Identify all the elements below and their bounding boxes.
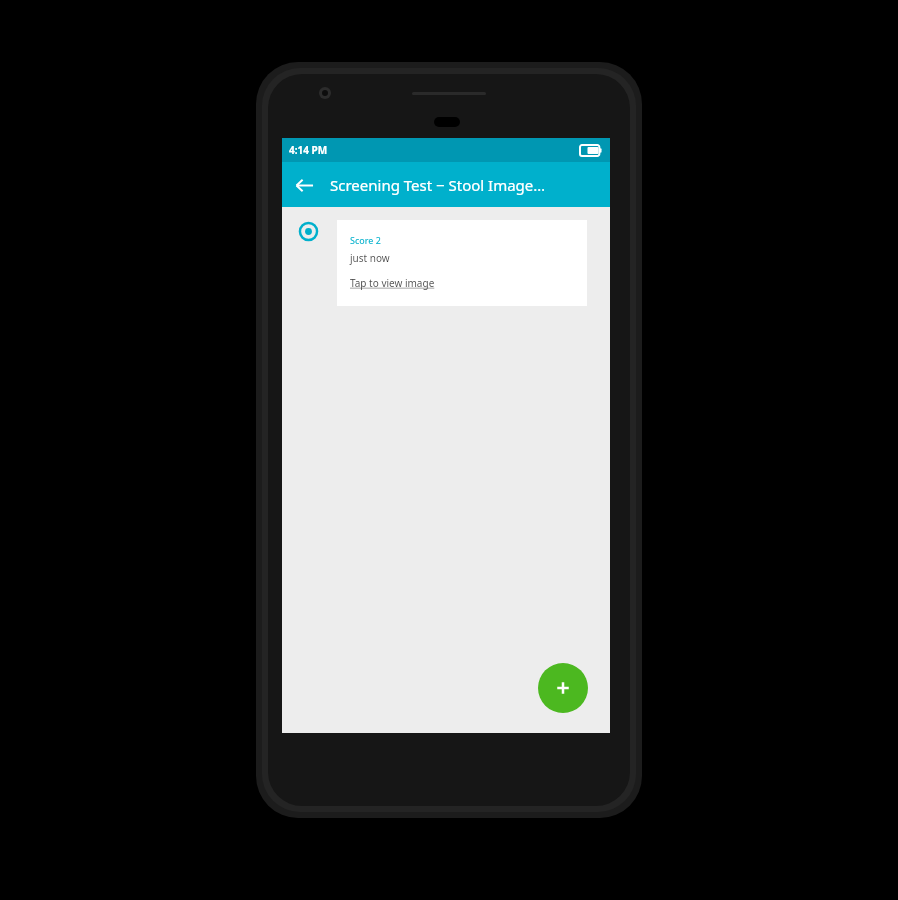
button[interactable]: Back [282,163,326,207]
staticText: just now [350,251,390,265]
staticText: Tap to view image [350,276,435,290]
button[interactable]: Score 2 [337,220,587,306]
button[interactable]: Add [538,663,588,713]
staticText: Score 2 [350,234,381,246]
staticText: 4:14 PM [289,143,328,157]
staticText: Screening Test − Stool Image… [330,175,546,195]
